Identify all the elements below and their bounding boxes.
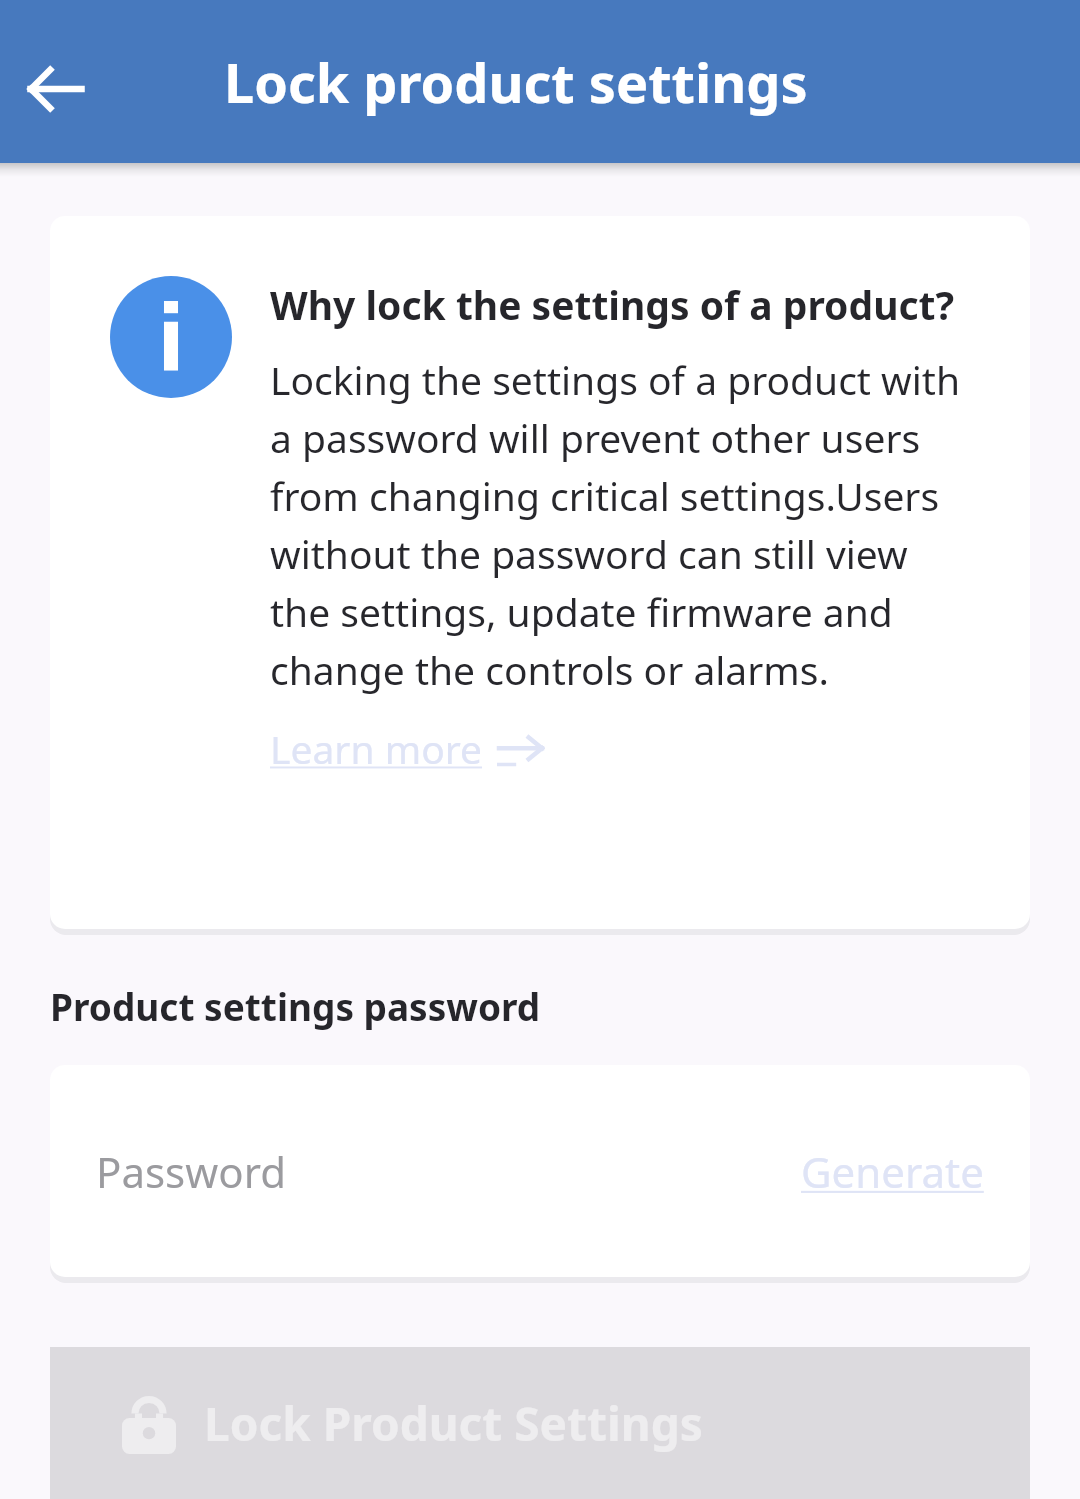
- button[interactable]: Back: [20, 53, 92, 125]
- staticText: Password: [96, 1143, 286, 1200]
- staticText: Product settings password: [50, 981, 541, 1031]
- staticText: Generate: [801, 1143, 984, 1200]
- button[interactable]: Password: [50, 1065, 1030, 1277]
- staticText: Lock product settings: [224, 45, 808, 119]
- button[interactable]: Lock Product Settings: [50, 1347, 1030, 1499]
- staticText: Learn more: [270, 722, 483, 775]
- button[interactable]: Learn more: [270, 722, 545, 775]
- button[interactable]: Generate: [801, 1143, 984, 1200]
- staticText: Locking the settings of a product with a…: [270, 353, 970, 696]
- staticText: Lock Product Settings: [204, 1392, 703, 1455]
- staticText: Why lock the settings of a product?: [270, 278, 955, 331]
